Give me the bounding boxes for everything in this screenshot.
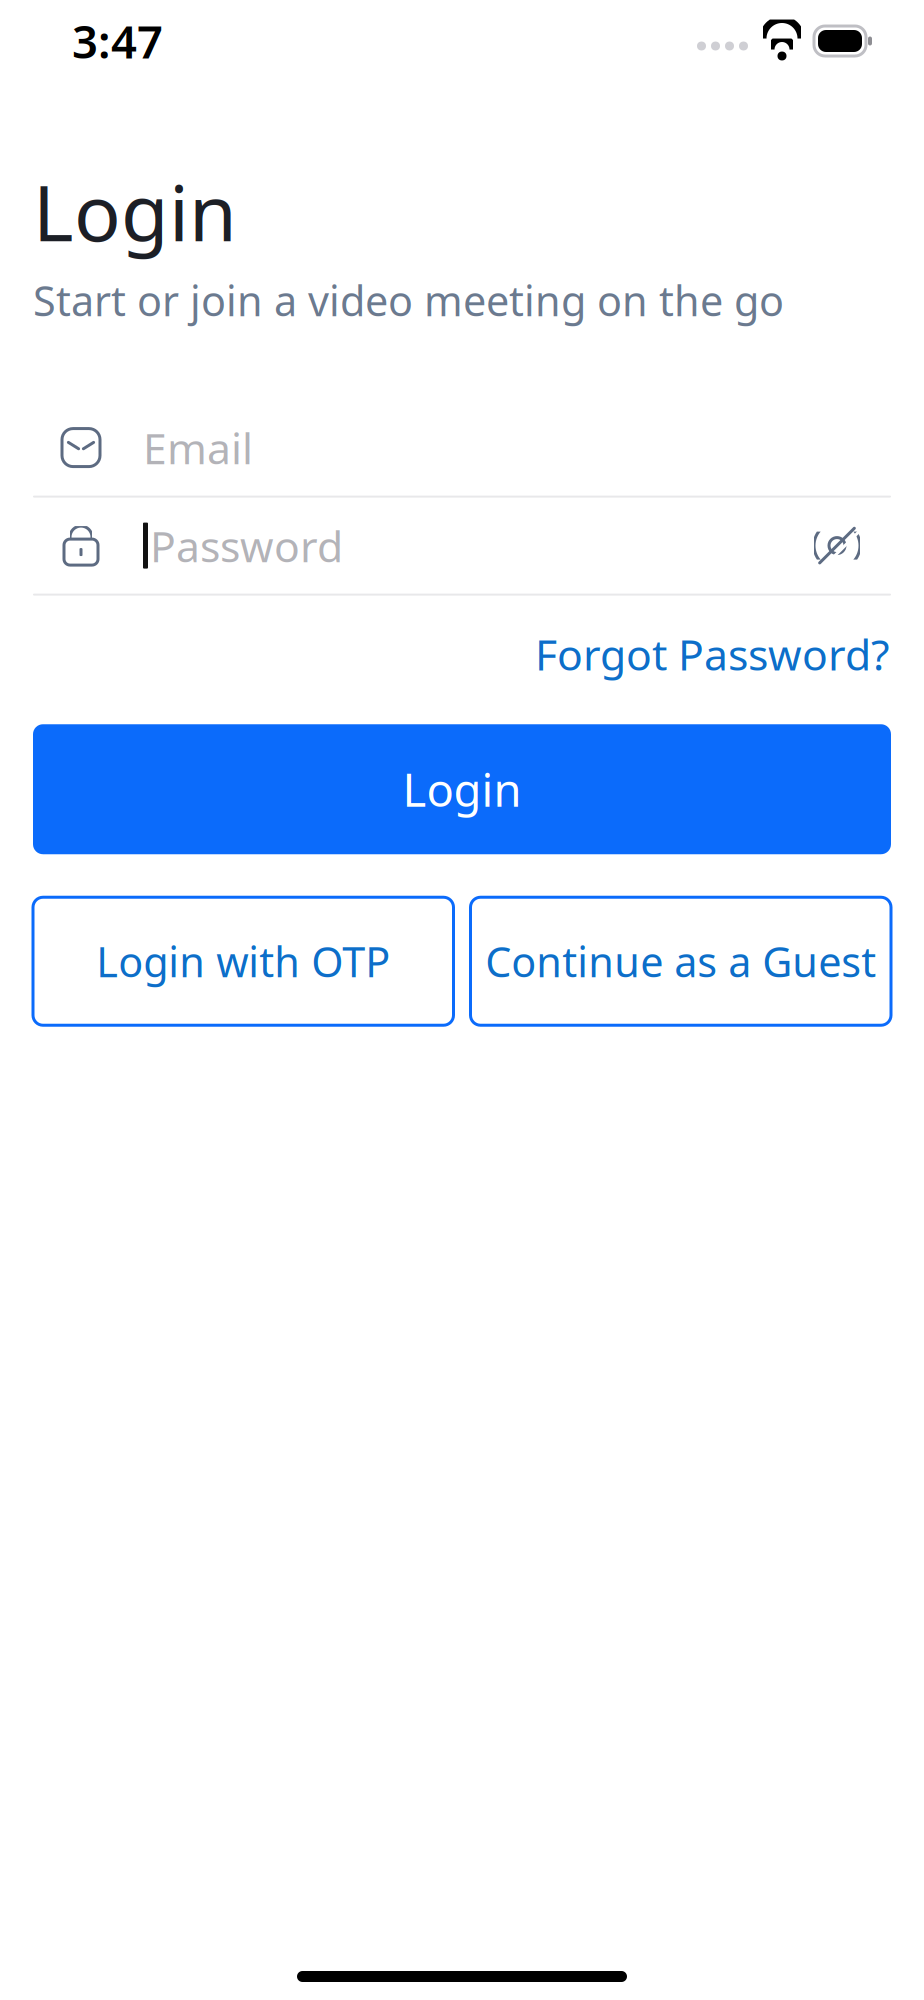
button[interactable]: Show password [811, 520, 891, 572]
staticText: Login with OTP [96, 934, 390, 989]
staticText: 3:47 [72, 11, 163, 71]
staticText: Login [33, 160, 237, 263]
staticText: Continue as a Guest [485, 934, 876, 989]
staticText: Password [150, 517, 343, 574]
button[interactable]: Login [33, 724, 891, 854]
staticText: Email [143, 419, 253, 476]
staticText: Start or join a video meeting on the go [33, 273, 784, 328]
button[interactable]: Continue as a Guest [470, 897, 891, 1025]
button[interactable]: Forgot Password? [535, 626, 890, 682]
staticText: Forgot Password? [535, 626, 890, 682]
staticText: Login [402, 759, 521, 819]
button[interactable]: Login with OTP [33, 897, 453, 1025]
